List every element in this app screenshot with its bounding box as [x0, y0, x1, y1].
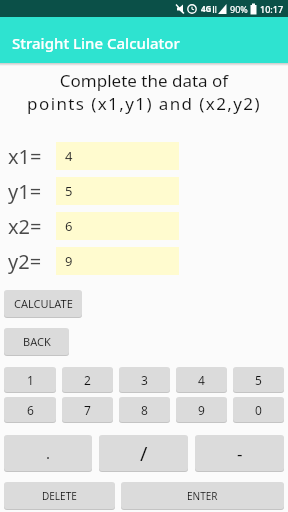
staticText: 5: [65, 182, 73, 200]
staticText: 0: [255, 402, 262, 418]
staticText: .: [46, 443, 51, 463]
staticText: y2=: [8, 248, 42, 275]
button[interactable]: DELETE: [4, 482, 115, 509]
staticText: DELETE: [42, 489, 77, 503]
staticText: CALCULATE: [14, 296, 73, 311]
button[interactable]: 8: [119, 397, 170, 422]
button[interactable]: ENTER: [121, 482, 284, 509]
staticText: 5: [255, 372, 262, 388]
staticText: BACK: [23, 334, 51, 349]
staticText: 6: [27, 402, 34, 418]
staticText: 1: [27, 372, 34, 388]
button[interactable]: .: [4, 435, 92, 471]
staticText: 2: [84, 372, 91, 388]
button[interactable]: BACK: [4, 328, 69, 355]
staticText: -: [237, 442, 243, 465]
button[interactable]: 6: [56, 212, 179, 240]
button[interactable]: 5: [233, 367, 284, 392]
button[interactable]: -: [195, 435, 284, 471]
button[interactable]: 0: [233, 397, 284, 422]
button[interactable]: CALCULATE: [4, 290, 82, 317]
button[interactable]: 7: [62, 397, 113, 422]
staticText: 7: [84, 402, 91, 418]
staticText: 4G: [201, 3, 212, 14]
button[interactable]: 1: [4, 367, 56, 392]
staticText: /: [140, 440, 148, 467]
button[interactable]: 4: [176, 367, 227, 392]
staticText: y1=: [8, 178, 42, 205]
staticText: 4: [198, 372, 205, 388]
button[interactable]: 6: [4, 397, 56, 422]
staticText: 9: [198, 402, 205, 418]
staticText: 3: [141, 372, 148, 388]
staticText: 4: [65, 147, 73, 165]
button[interactable]: 9: [176, 397, 227, 422]
staticText: Complete the data of: [0, 69, 288, 92]
staticText: ENTER: [187, 489, 218, 503]
staticText: 8: [141, 402, 148, 418]
button[interactable]: 5: [56, 177, 179, 205]
button[interactable]: 3: [119, 367, 170, 392]
button[interactable]: 2: [62, 367, 113, 392]
button[interactable]: 4: [56, 142, 179, 170]
staticText: x1=: [8, 143, 42, 170]
staticText: points (x1,y1) and (x2,y2): [0, 92, 288, 115]
staticText: 9: [65, 252, 73, 270]
staticText: x2=: [8, 213, 42, 240]
staticText: 90%: [230, 3, 248, 15]
button[interactable]: 9: [56, 247, 179, 275]
staticText: 10:17: [260, 3, 284, 15]
button[interactable]: /: [99, 435, 188, 471]
staticText: 6: [65, 217, 73, 235]
staticText: Straight Line Calculator: [12, 33, 180, 53]
